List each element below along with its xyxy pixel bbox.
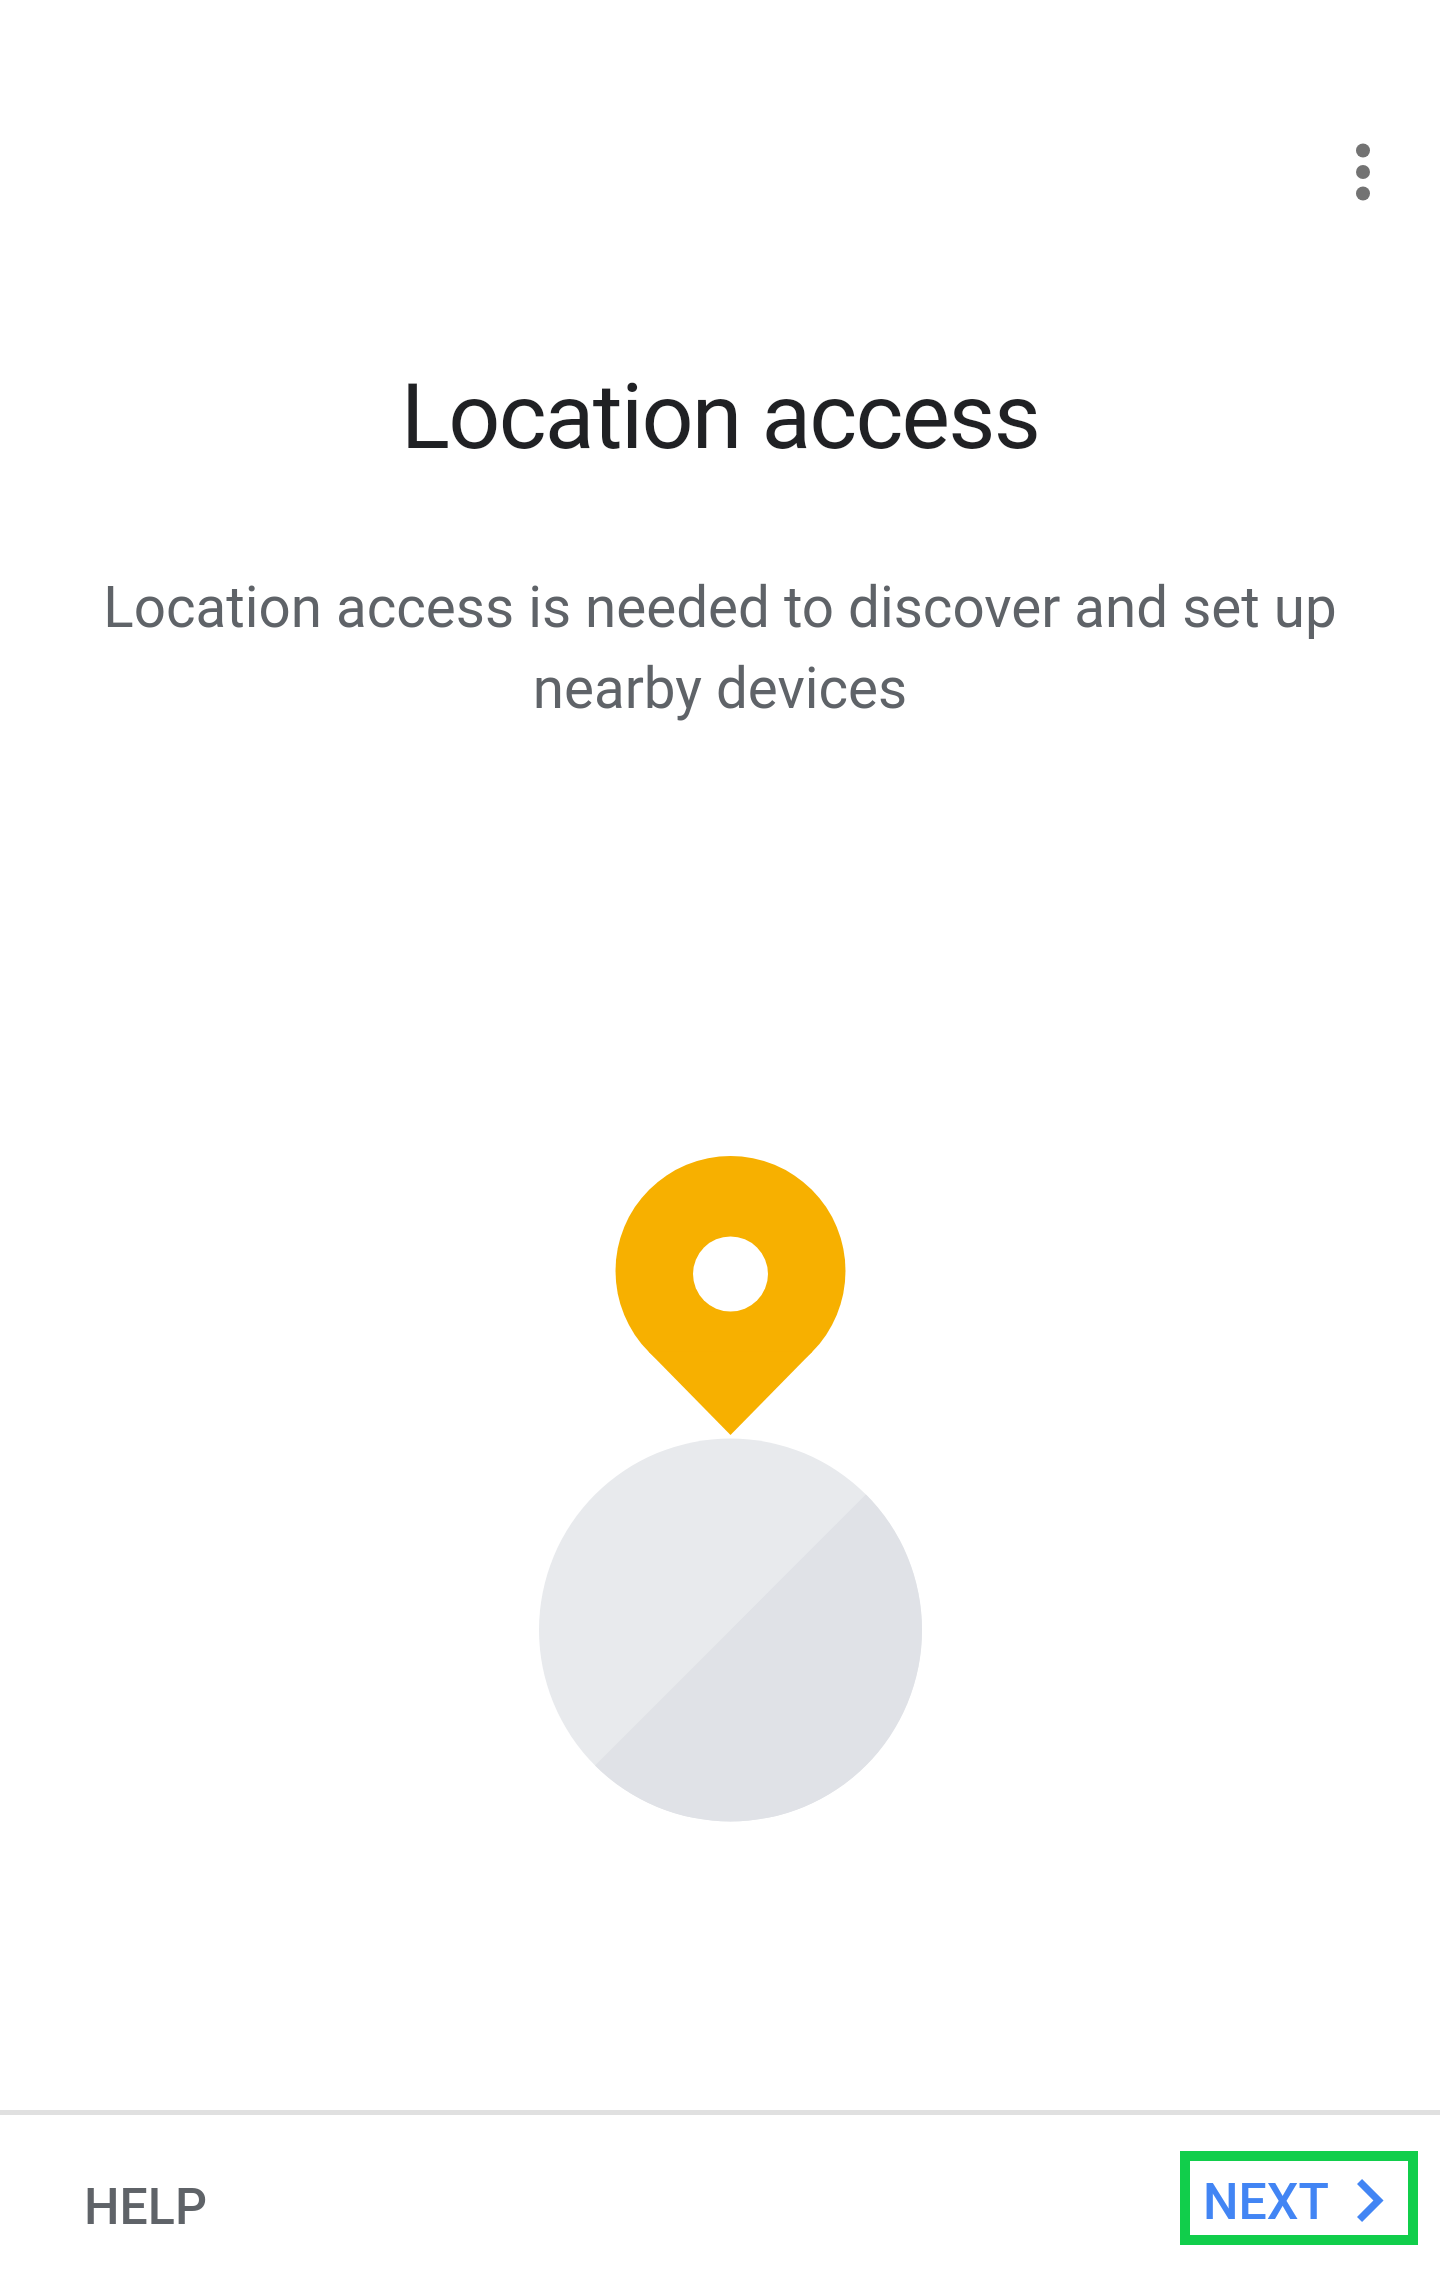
button[interactable]: HELP xyxy=(40,2160,250,2254)
button[interactable] xyxy=(1315,124,1411,220)
staticText: HELP xyxy=(84,2178,207,2237)
staticText: nearby devices xyxy=(0,656,1440,722)
staticText: Location access xyxy=(0,363,1440,470)
staticText: NEXT xyxy=(1203,2173,1329,2232)
button[interactable]: NEXT xyxy=(1180,2151,1418,2245)
staticText: Location access is needed to discover an… xyxy=(0,575,1440,641)
